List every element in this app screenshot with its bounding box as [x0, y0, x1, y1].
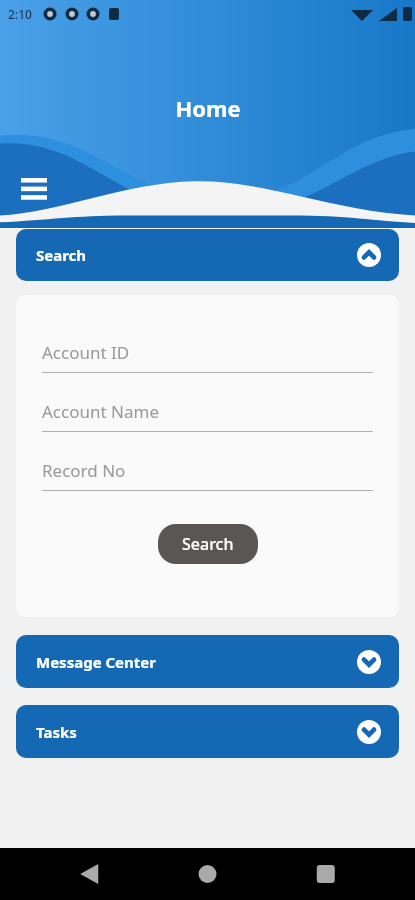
staticText: Search: [182, 533, 234, 555]
button[interactable]: Search: [158, 524, 258, 564]
staticText: Search: [36, 245, 87, 265]
button[interactable]: Message Center: [16, 635, 399, 688]
staticText: Record No: [42, 459, 126, 482]
staticText: Account ID: [42, 341, 130, 364]
staticText: Tasks: [36, 722, 77, 742]
staticText: 2:10: [8, 6, 32, 22]
button[interactable]: Search: [16, 229, 399, 281]
staticText: Message Center: [36, 652, 156, 672]
staticText: Account Name: [42, 400, 159, 423]
staticText: Home: [175, 93, 241, 123]
button[interactable]: Tasks: [16, 705, 399, 758]
button[interactable]: Open navigation menu: [12, 166, 56, 210]
